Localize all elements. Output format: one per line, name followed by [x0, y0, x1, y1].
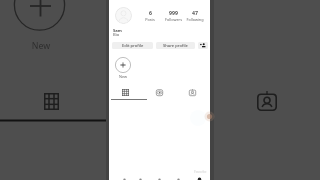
button[interactable]: Home: [116, 175, 132, 180]
staticText: Share profile: [163, 43, 188, 49]
button[interactable]: Reels: [143, 86, 176, 99]
button[interactable]: Grid: [109, 86, 142, 99]
staticText: New: [114, 74, 132, 79]
button[interactable]: Tagged photos: [257, 91, 277, 111]
staticText: Sam: [113, 28, 122, 34]
button[interactable]: Edit profile: [112, 42, 153, 49]
button[interactable]: Share profile: [156, 42, 195, 49]
staticText: 6: [149, 9, 152, 16]
staticText: New: [26, 40, 56, 52]
button[interactable]: Shop: [170, 175, 186, 180]
staticText: 47: [192, 9, 198, 16]
staticText: Edit profile: [122, 43, 144, 49]
button[interactable]: Discover people: [198, 42, 208, 49]
button[interactable]: 6: [138, 9, 162, 22]
staticText: 999: [169, 9, 178, 16]
button[interactable]: 999: [161, 9, 185, 22]
button[interactable]: New highlight: [115, 57, 131, 73]
staticText: Followers: [165, 17, 182, 22]
button[interactable]: Search: [132, 175, 148, 180]
button[interactable]: Profile: [191, 175, 207, 180]
button[interactable]: Tagged: [176, 86, 209, 99]
staticText: Bio: [113, 32, 120, 38]
button[interactable]: Reels: [151, 175, 167, 180]
staticText: Following: [186, 17, 204, 22]
button[interactable]: 47: [183, 9, 207, 22]
staticText: Posts: [145, 17, 155, 22]
button[interactable]: Posts grid: [44, 93, 59, 110]
button[interactable]: Profile photo: [115, 7, 132, 24]
staticText: Favorite: [194, 170, 207, 174]
